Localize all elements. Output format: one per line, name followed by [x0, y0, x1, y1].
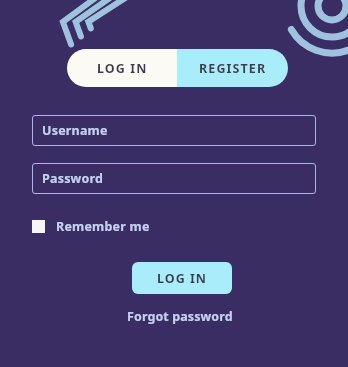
- button[interactable]: LOG IN: [132, 262, 232, 294]
- button[interactable]: Remember me checkbox: [32, 218, 150, 235]
- staticText: REGISTER: [199, 60, 267, 77]
- staticText: Password: [42, 170, 104, 187]
- staticText: Forgot password: [127, 308, 233, 325]
- button[interactable]: Username: [32, 115, 316, 146]
- button[interactable]: Forgot password: [123, 306, 237, 327]
- button[interactable]: Password: [32, 163, 316, 194]
- staticText: Remember me: [56, 218, 150, 235]
- staticText: LOG IN: [97, 60, 148, 77]
- staticText: Username: [42, 122, 108, 139]
- button[interactable]: LOG IN: [67, 49, 177, 87]
- button[interactable]: REGISTER: [177, 49, 288, 87]
- staticText: LOG IN: [157, 270, 207, 287]
